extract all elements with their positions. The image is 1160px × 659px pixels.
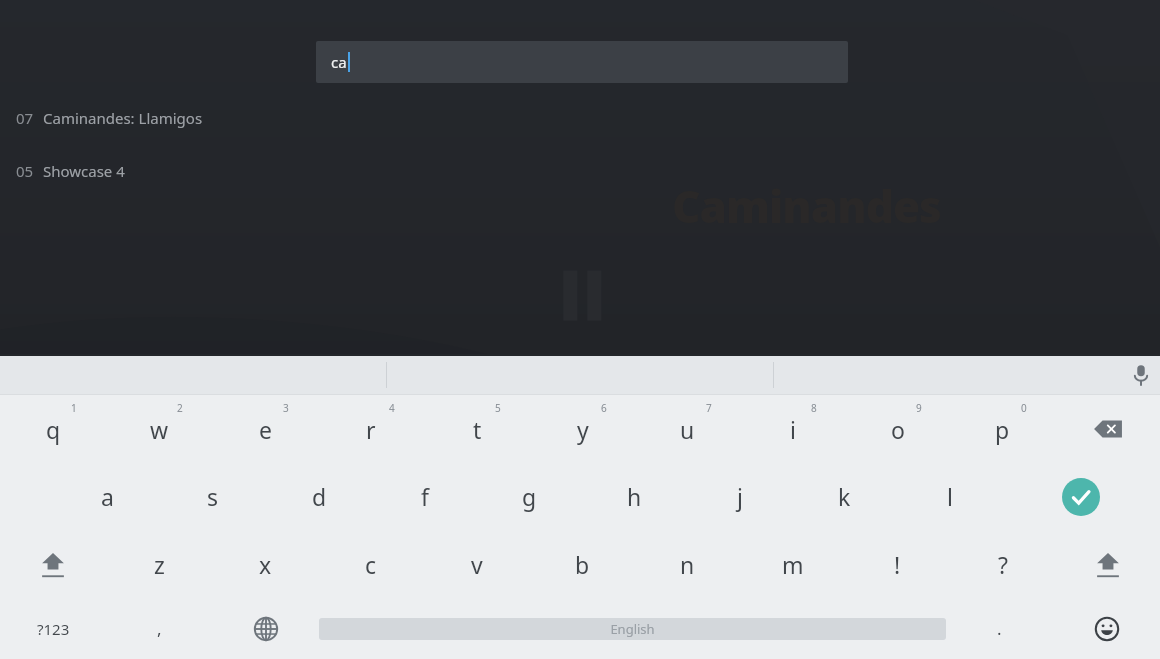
button[interactable]: i [740, 395, 845, 463]
staticText: m [782, 549, 804, 580]
staticText: 2 [177, 401, 183, 415]
staticText: g [522, 481, 537, 512]
button[interactable]: n [635, 530, 740, 598]
button[interactable]: Delete [1055, 395, 1160, 463]
button[interactable]: w [106, 395, 212, 463]
button[interactable] [774, 356, 1160, 394]
staticText: o [891, 414, 905, 445]
button[interactable]: ?123 [0, 598, 106, 659]
button[interactable]: 07 [0, 103, 420, 132]
button[interactable]: h [582, 463, 687, 530]
staticText: u [680, 414, 695, 445]
staticText: ! [894, 549, 901, 580]
staticText: k [838, 481, 851, 512]
staticText: j [737, 481, 743, 512]
button[interactable]: f [372, 463, 477, 530]
button[interactable]: j [687, 463, 792, 530]
staticText: 8 [811, 401, 817, 415]
staticText: Caminandes: Llamigos [43, 108, 203, 128]
button[interactable]: z [106, 530, 212, 598]
staticText: r [366, 414, 376, 445]
button[interactable]: l [897, 463, 1002, 530]
staticText: l [947, 481, 953, 512]
staticText: i [790, 414, 796, 445]
button[interactable]: d [266, 463, 372, 530]
button[interactable]: y [530, 395, 635, 463]
button[interactable]: o [845, 395, 950, 463]
button[interactable]: m [740, 530, 845, 598]
button[interactable]: p [950, 395, 1055, 463]
staticText: 07 [16, 108, 34, 128]
button[interactable]: a [54, 463, 160, 530]
button[interactable]: v [424, 530, 530, 598]
button[interactable]: , [106, 598, 212, 659]
staticText: x [259, 549, 272, 580]
button[interactable]: . [946, 598, 1053, 659]
button[interactable]: g [477, 463, 582, 530]
button[interactable]: s [160, 463, 266, 530]
button[interactable]: Shift [1055, 530, 1160, 598]
staticText: c [365, 549, 377, 580]
staticText: y [577, 414, 589, 445]
staticText: e [259, 414, 272, 445]
staticText: ca [331, 52, 347, 72]
button[interactable]: English [319, 598, 946, 659]
button[interactable]: Voice input [1122, 356, 1160, 394]
staticText: a [101, 481, 114, 512]
button[interactable]: x [212, 530, 318, 598]
staticText: 6 [601, 401, 607, 415]
staticText: 5 [495, 401, 501, 415]
staticText: s [207, 481, 219, 512]
staticText: ? [998, 549, 1008, 580]
staticText: d [312, 481, 327, 512]
button[interactable]: Shift [0, 530, 106, 598]
staticText: ?123 [37, 619, 70, 639]
staticText: f [421, 481, 429, 512]
button[interactable]: k [792, 463, 897, 530]
staticText: p [995, 414, 1010, 445]
button[interactable]: t [424, 395, 530, 463]
button[interactable]: r [318, 395, 424, 463]
staticText: w [150, 414, 169, 445]
button[interactable]: 05 [0, 156, 420, 185]
button[interactable]: b [530, 530, 635, 598]
button[interactable]: ? [950, 530, 1055, 598]
staticText: 7 [706, 401, 712, 415]
staticText: n [680, 549, 695, 580]
button[interactable]: Enter [1002, 463, 1160, 530]
staticText: 0 [1021, 401, 1027, 415]
staticText: , [157, 617, 162, 640]
button[interactable]: q [0, 395, 106, 463]
button[interactable]: Emoji [1053, 598, 1160, 659]
staticText: b [575, 549, 590, 580]
staticText: English [610, 620, 655, 638]
staticText: . [997, 617, 1002, 640]
button[interactable]: e [212, 395, 318, 463]
staticText: 05 [16, 161, 34, 181]
staticText: v [471, 549, 483, 580]
staticText: Showcase 4 [43, 161, 125, 181]
staticText: z [154, 549, 165, 580]
staticText: 9 [916, 401, 922, 415]
button[interactable]: c [318, 530, 424, 598]
button[interactable]: ! [845, 530, 950, 598]
button[interactable]: u [635, 395, 740, 463]
staticText: h [627, 481, 642, 512]
button[interactable]: ca [316, 41, 848, 83]
staticText: 3 [283, 401, 289, 415]
staticText: t [473, 414, 482, 445]
staticText: 1 [71, 401, 77, 415]
staticText: 4 [389, 401, 395, 415]
staticText: q [46, 414, 61, 445]
button[interactable]: Change language [212, 598, 319, 659]
